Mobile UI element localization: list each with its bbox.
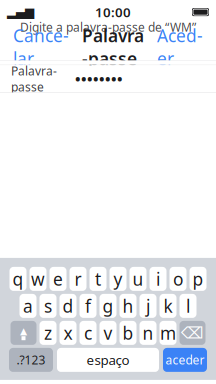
staticText: o [173, 267, 183, 290]
staticText: q [12, 267, 23, 290]
staticText: ⌫ [181, 324, 204, 342]
button[interactable]: s [39, 294, 56, 318]
button[interactable]: k [159, 294, 176, 318]
button[interactable]: v [99, 321, 116, 345]
button[interactable]: g [99, 294, 116, 318]
button[interactable]: e [49, 267, 66, 291]
button[interactable]: espaço [57, 348, 159, 372]
staticText: 10:00 [95, 3, 131, 21]
button[interactable]: f [79, 294, 96, 318]
button[interactable]: o [169, 267, 186, 291]
staticText: f [85, 294, 91, 317]
staticText: Palavra-passe [82, 24, 144, 70]
staticText: g [102, 294, 113, 317]
staticText: .?123 [16, 352, 45, 368]
staticText: m [160, 321, 176, 344]
staticText: h [122, 294, 133, 317]
button[interactable]: Palavra-passe [0, 65, 216, 92]
button[interactable]: r [69, 267, 86, 291]
staticText: ▂▄▆ [7, 5, 34, 19]
staticText: a [23, 294, 33, 317]
button[interactable]: y [109, 267, 126, 291]
staticText: z [44, 321, 52, 344]
button[interactable]: Shift [10, 321, 36, 345]
staticText: c [84, 321, 92, 344]
staticText: k [163, 294, 172, 317]
button[interactable]: Aceder [153, 20, 207, 74]
button[interactable]: i [149, 267, 166, 291]
button[interactable]: x [59, 321, 76, 345]
button[interactable]: n [139, 321, 156, 345]
button[interactable]: a [19, 294, 36, 318]
staticText: t [95, 267, 101, 290]
button[interactable]: c [79, 321, 96, 345]
button[interactable]: l [179, 294, 196, 318]
staticText: u [132, 267, 143, 290]
staticText: ▲ [20, 326, 27, 336]
staticText: n [142, 321, 153, 344]
button[interactable]: u [129, 267, 146, 291]
button[interactable]: aceder [163, 348, 207, 372]
staticText: b [122, 321, 133, 344]
staticText: j [146, 294, 150, 317]
staticText: Palavra-passe [11, 63, 57, 95]
staticText: aceder [165, 352, 204, 368]
staticText: Cancelar [13, 24, 69, 70]
staticText: s [44, 294, 52, 317]
staticText: y [113, 267, 122, 290]
staticText: r [74, 267, 81, 290]
button[interactable]: j [139, 294, 156, 318]
button[interactable]: w [29, 267, 46, 291]
button[interactable]: b [119, 321, 136, 345]
staticText: •••••••• [75, 69, 123, 89]
button[interactable]: p [189, 267, 206, 291]
staticText: i [156, 267, 160, 290]
button[interactable]: z [39, 321, 56, 345]
staticText: e [53, 267, 63, 290]
staticText: Aceder [157, 24, 203, 70]
button[interactable]: h [119, 294, 136, 318]
button[interactable]: Delete [179, 321, 205, 345]
button[interactable]: .?123 [9, 348, 53, 372]
staticText: w [31, 267, 45, 290]
button[interactable]: q [9, 267, 26, 291]
button[interactable]: d [59, 294, 76, 318]
staticText: v [103, 321, 112, 344]
staticText: d [62, 294, 73, 317]
button[interactable]: t [89, 267, 106, 291]
button[interactable]: Cancelar [9, 20, 73, 74]
staticText: espaço [86, 351, 129, 369]
staticText: x [63, 321, 72, 344]
staticText: Digite a palavra-passe de “WM” [20, 19, 196, 35]
staticText: p [192, 267, 203, 290]
staticText: l [186, 294, 190, 317]
button[interactable]: m [159, 321, 176, 345]
